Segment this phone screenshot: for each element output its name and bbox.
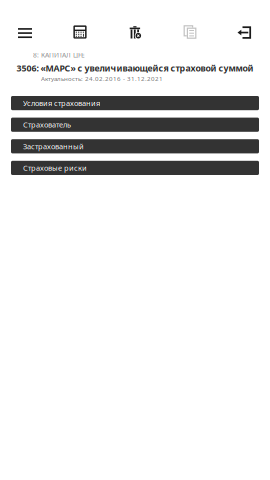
staticText: 8: КАПИТАЛ LIFE [33, 50, 85, 60]
button[interactable]: Застрахованный [11, 139, 259, 153]
button[interactable]: Delete [113, 17, 157, 47]
staticText: Актуальность: 24.02.2016 - 31.12.2021 [41, 74, 163, 83]
button[interactable]: Условия страхования [11, 96, 259, 110]
button[interactable]: Copy [168, 17, 212, 47]
button[interactable]: Страхователь [11, 118, 259, 132]
button[interactable]: Страховые риски [11, 161, 259, 175]
staticText: Застрахованный [23, 141, 84, 151]
button[interactable]: Menu [3, 17, 47, 47]
button[interactable]: Calculator [58, 17, 102, 47]
button[interactable]: Exit [223, 17, 267, 47]
staticText: 3506: «МАРС» с увеличивающейся страховой… [16, 62, 253, 74]
staticText: Страхователь [23, 120, 71, 130]
staticText: Условия страхования [23, 98, 100, 108]
staticText: Страховые риски [23, 163, 87, 173]
